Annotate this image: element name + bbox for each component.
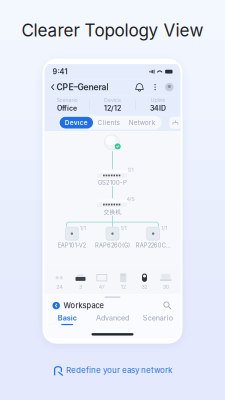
button[interactable]: Network	[124, 117, 160, 128]
staticText: CPE–General	[56, 82, 108, 92]
staticText: Workspace	[63, 301, 103, 310]
staticText: 3	[79, 284, 82, 290]
button[interactable]: Advanced	[90, 314, 135, 325]
staticText: RAP2260C…	[136, 242, 171, 249]
staticText: 34ID	[150, 104, 166, 112]
staticText: EAP101-V2	[58, 242, 86, 249]
staticText: Network	[129, 119, 156, 126]
button[interactable]: Device	[60, 117, 93, 128]
staticText: Scenario	[143, 314, 173, 322]
staticText: GS2100-P	[98, 179, 127, 186]
staticText: 1/1	[161, 225, 167, 231]
button[interactable]: CPE–General	[51, 80, 108, 94]
staticText: 1/1	[127, 167, 133, 173]
staticText: Office	[57, 104, 77, 112]
staticText: Uplink	[150, 97, 165, 103]
button[interactable]: 32	[134, 273, 155, 290]
staticText: Redefine your easy network	[66, 365, 172, 375]
button[interactable]: 30	[155, 273, 176, 290]
button[interactable]: Notifications	[134, 82, 145, 92]
staticText: 交换机	[103, 208, 121, 216]
button[interactable]: 47	[91, 273, 112, 290]
staticText: Scenario	[56, 97, 77, 103]
staticText: 47	[99, 284, 105, 290]
button[interactable]: Clients	[93, 117, 124, 128]
staticText: Clients	[98, 119, 120, 126]
staticText: RAP6260(G)	[95, 242, 130, 249]
button[interactable]: More options	[152, 82, 158, 92]
button[interactable]: Account	[165, 83, 173, 91]
staticText: 32	[141, 284, 147, 290]
button[interactable]: 12	[112, 273, 134, 290]
staticText: 1/1	[120, 225, 126, 231]
staticText: 9:41	[52, 67, 67, 76]
staticText: Basic	[58, 314, 77, 322]
staticText: Device	[65, 119, 88, 126]
staticText: Clearer Topology View	[21, 20, 203, 41]
button[interactable]: 24	[48, 273, 70, 290]
button[interactable]: Search	[162, 301, 172, 311]
staticText: 30	[163, 284, 169, 290]
button[interactable]: Topology layout	[169, 117, 181, 129]
staticText: 4/5	[126, 196, 134, 202]
staticText: 12	[121, 284, 126, 290]
staticText: 1/1	[80, 225, 86, 231]
staticText: 24	[56, 284, 62, 290]
staticText: 12/12	[104, 104, 121, 112]
staticText: Advanced	[96, 314, 129, 322]
button[interactable]: Basic	[44, 314, 90, 325]
button[interactable]: Scenario	[135, 314, 180, 325]
button[interactable]: 3	[70, 273, 91, 290]
staticText: Device	[104, 97, 121, 103]
